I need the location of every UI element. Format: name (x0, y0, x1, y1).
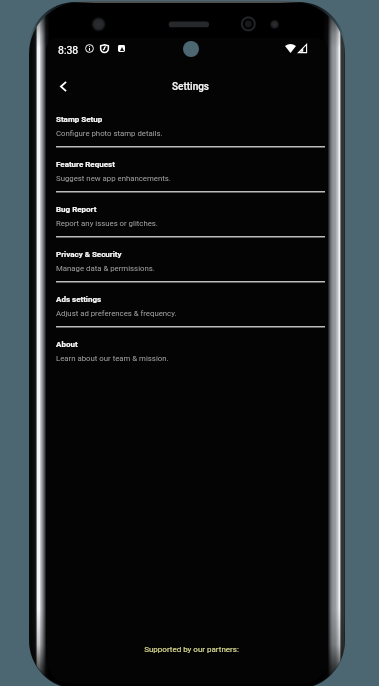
button[interactable]: Ads settings (46, 281, 328, 326)
button[interactable]: Stamp Setup (46, 101, 328, 146)
staticText: 8:38 (58, 44, 79, 56)
staticText: Bug Report (56, 205, 97, 214)
staticText: Report any issues or glitches. (56, 219, 158, 228)
staticText: Suggest new app enhancements. (56, 174, 171, 183)
button[interactable]: Back (53, 76, 73, 96)
other: Wi-Fi (285, 44, 296, 53)
button[interactable]: About (46, 326, 328, 371)
staticText: Learn about our team & mission. (56, 354, 169, 363)
button[interactable]: Bug Report (46, 191, 328, 236)
staticText: Settings (172, 81, 210, 93)
staticText: Supported by our partners: (144, 645, 239, 654)
staticText: Configure photo stamp details. (56, 129, 163, 138)
staticText: Stamp Setup (56, 115, 103, 124)
other: Info (85, 44, 94, 53)
staticText: About (56, 340, 78, 349)
button[interactable]: Feature Request (46, 146, 328, 191)
staticText: Privacy & Security (56, 250, 122, 259)
staticText: Feature Request (56, 160, 115, 169)
staticText: Manage data & permissions. (56, 264, 155, 273)
other: Mobile signal (298, 44, 307, 53)
other: Security (100, 44, 109, 53)
button[interactable]: Privacy & Security (46, 236, 328, 281)
staticText: Adjust ad preferences & frequency. (56, 309, 177, 318)
staticText: Ads settings (56, 295, 102, 304)
